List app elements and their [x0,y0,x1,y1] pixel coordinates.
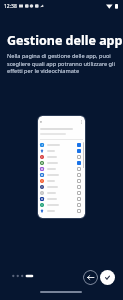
staticText: Gestione delle app [7,32,123,49]
staticText: Nella pagina di gestione delle app, puoi… [7,52,119,74]
button[interactable]: Indietro [83,270,98,285]
staticText: 12:38 [4,3,17,10]
button[interactable]: Fine [100,270,115,285]
